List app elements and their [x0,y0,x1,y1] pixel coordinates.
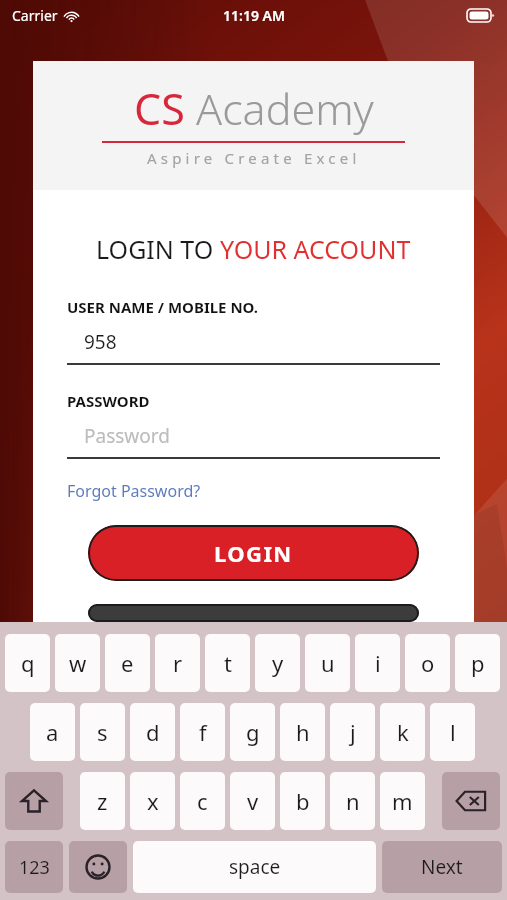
button[interactable]: r [155,634,200,692]
button[interactable]: s [80,703,125,761]
staticText: m [392,786,413,816]
button[interactable]: q [5,634,50,692]
staticText: t [224,648,232,678]
button[interactable] [88,604,419,622]
button[interactable]: o [405,634,450,692]
staticText: PASSWORD [67,391,150,411]
staticText: x [147,786,159,816]
staticText: Forgot Password? [67,480,201,502]
staticText: 123 [19,855,50,880]
button[interactable]: j [330,703,375,761]
staticText: r [173,648,183,678]
button[interactable]: e [105,634,150,692]
staticText: z [97,786,108,816]
staticText: YOUR ACCOUNT [220,232,411,266]
staticText: j [350,717,356,747]
button[interactable]: y [255,634,300,692]
button[interactable]: Forgot Password? [67,480,201,502]
staticText: e [121,648,134,678]
button[interactable]: l [430,703,475,761]
button[interactable]: f [180,703,225,761]
staticText: space [229,854,281,880]
staticText: i [375,648,381,678]
button[interactable]: m [380,772,425,830]
staticText: s [97,717,108,747]
staticText: c [197,786,208,816]
staticText: Academy [196,79,374,138]
staticText: v [247,786,259,816]
staticText: q [21,648,35,678]
staticText: y [272,648,284,678]
button[interactable]: n [330,772,375,830]
button[interactable]: LOGIN [88,525,419,581]
button[interactable]: a [30,703,75,761]
button[interactable]: h [280,703,325,761]
staticText: Next [421,854,463,880]
button[interactable]: c [180,772,225,830]
staticText: LOGIN [214,538,293,568]
staticText: Carrier [12,6,58,25]
staticText: k [397,717,409,747]
staticText: u [321,648,335,678]
staticText: a [46,717,59,747]
button[interactable]: b [280,772,325,830]
staticText: CS [134,79,185,138]
staticText: 958 [84,329,117,355]
button[interactable]: v [230,772,275,830]
staticText: f [199,717,207,747]
button[interactable]: t [205,634,250,692]
button[interactable]: d [130,703,175,761]
staticText: b [296,786,310,816]
button[interactable]: Backspace [442,772,500,830]
button[interactable]: z [80,772,125,830]
staticText: n [346,786,360,816]
button[interactable]: p [455,634,500,692]
staticText: 11:19 AM [223,6,285,25]
button[interactable]: k [380,703,425,761]
button[interactable]: Shift [5,772,63,830]
staticText: l [450,717,456,747]
staticText: Aspire Create Excel [147,148,361,168]
staticText: LOGIN TO [96,232,220,266]
staticText: g [246,717,260,747]
staticText: o [421,648,435,678]
staticText: d [146,717,160,747]
staticText: p [471,648,485,678]
staticText: w [69,648,87,678]
button[interactable]: w [55,634,100,692]
button[interactable]: space [133,841,376,893]
button[interactable]: g [230,703,275,761]
button[interactable]: i [355,634,400,692]
staticText: h [296,717,310,747]
button[interactable]: Emoji [69,841,127,893]
staticText: USER NAME / MOBILE NO. [67,297,259,317]
button[interactable]: u [305,634,350,692]
button[interactable]: Next [382,841,502,893]
button[interactable]: 123 [5,841,63,893]
button[interactable]: x [130,772,175,830]
staticText: Password [84,423,170,449]
